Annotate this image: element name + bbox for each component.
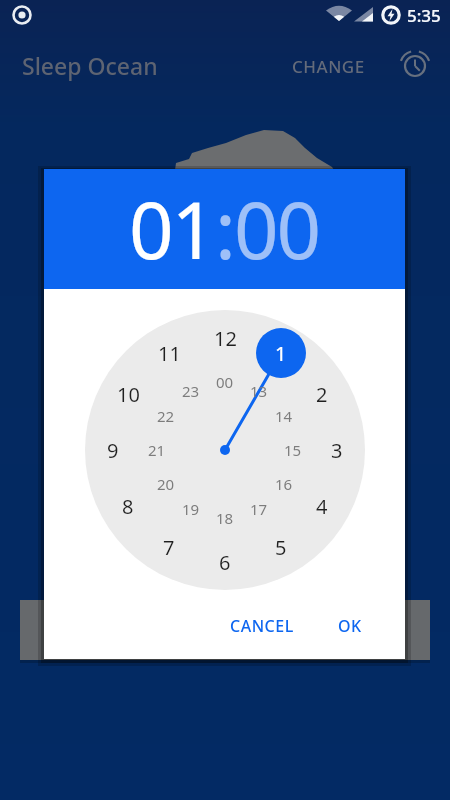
button[interactable]: CHANGE — [283, 48, 373, 84]
staticText: 17 — [250, 499, 268, 519]
button[interactable]: Sleep Ocean — [22, 50, 158, 81]
staticText: OK — [338, 615, 362, 637]
staticText: 21 — [148, 440, 166, 460]
staticText: 19 — [182, 499, 200, 519]
staticText: 23 — [182, 381, 200, 401]
staticText: 00 — [216, 372, 234, 392]
staticText: 4 — [316, 493, 328, 520]
staticText: 10 — [117, 381, 140, 408]
staticText: 01 — [129, 176, 215, 282]
staticText: : — [215, 176, 234, 282]
staticText: 9 — [107, 437, 119, 464]
staticText: 2 — [316, 381, 328, 408]
staticText: 5 — [275, 534, 287, 561]
staticText: 14 — [275, 406, 293, 426]
staticText: 18 — [216, 508, 234, 528]
staticText: 16 — [275, 474, 293, 494]
staticText: Sleep Ocean — [22, 50, 158, 81]
button[interactable]: OK — [318, 600, 382, 652]
staticText: 12 — [214, 325, 237, 352]
staticText: 8 — [122, 493, 134, 520]
staticText: 15 — [284, 440, 302, 460]
staticText: 1 — [275, 340, 287, 367]
staticText: CHANGE — [292, 55, 365, 78]
staticText: 20 — [157, 474, 175, 494]
staticText: 00 — [234, 176, 320, 282]
staticText: 13 — [250, 381, 268, 401]
staticText: CANCEL — [230, 615, 294, 637]
staticText: 6 — [219, 549, 231, 576]
staticText: 5:35 — [407, 4, 441, 27]
button[interactable]: CANCEL — [214, 600, 310, 652]
button[interactable] — [397, 48, 433, 84]
staticText: 7 — [163, 534, 175, 561]
staticText: 22 — [157, 406, 175, 426]
staticText: 3 — [331, 437, 343, 464]
staticText: 11 — [158, 340, 181, 367]
